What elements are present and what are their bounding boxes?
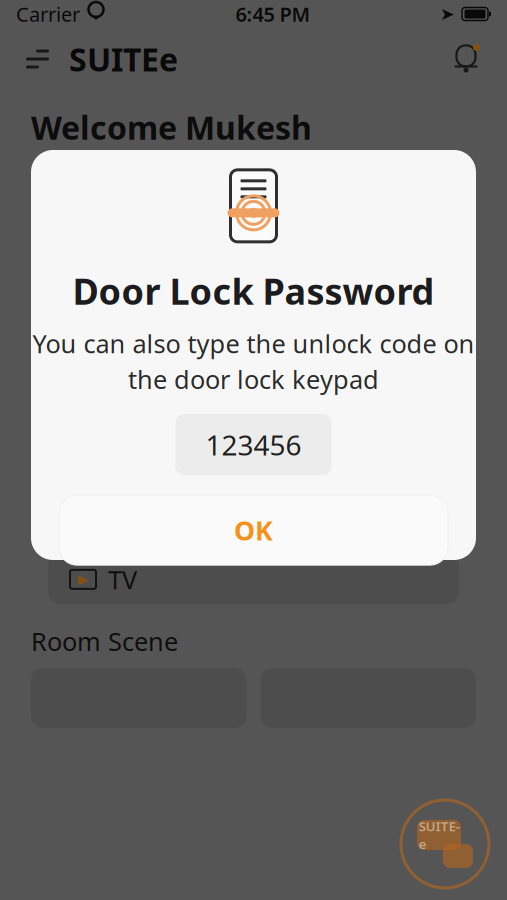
staticText: Carrier — [16, 1, 80, 27]
staticText: TV — [108, 562, 137, 596]
staticText: Welcome Mukesh — [31, 106, 312, 148]
staticText: SUITEe — [418, 817, 459, 853]
staticText: Door Lock Password — [72, 267, 434, 315]
staticText: 💡 — [235, 435, 272, 468]
staticText: ▶ — [78, 572, 88, 587]
staticText: You can also type the unlock code on — [32, 327, 474, 360]
staticText: 123456 — [205, 426, 301, 463]
button[interactable]: 💡 — [184, 427, 323, 489]
staticText: SUITEe — [69, 38, 178, 80]
staticText: We got properties with coolest stuff pac… — [31, 162, 414, 223]
button[interactable]: OK — [59, 495, 448, 565]
staticText: Room Scene — [31, 624, 178, 658]
staticText: the door lock keypad — [128, 362, 379, 396]
button[interactable]: ▶ — [48, 554, 459, 604]
button[interactable]: Notifications — [439, 31, 493, 87]
staticText: 6:45 PM — [235, 1, 310, 27]
staticText: ➤ — [440, 4, 455, 24]
button[interactable]: Menu — [14, 36, 61, 81]
staticText: OK — [234, 512, 273, 548]
button[interactable]: Chat with SUITEe — [399, 798, 491, 890]
